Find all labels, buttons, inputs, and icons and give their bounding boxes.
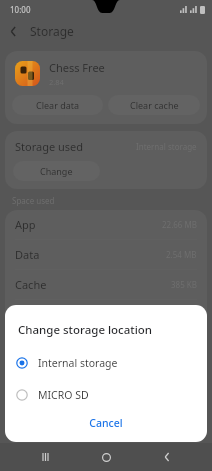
button[interactable]: Total bbox=[5, 300, 207, 329]
staticText: 385 KB bbox=[171, 279, 197, 290]
staticText: Cache bbox=[15, 277, 47, 292]
staticText: Internal storage bbox=[136, 141, 197, 152]
button[interactable]: Clear data bbox=[12, 95, 103, 115]
button[interactable]: Cancel bbox=[5, 408, 207, 438]
staticText: 22.66 MB bbox=[162, 219, 197, 230]
staticText: Chess Free bbox=[49, 60, 105, 75]
button[interactable]: MICRO SD bbox=[5, 384, 207, 406]
button[interactable]: Back bbox=[152, 443, 182, 471]
staticText: Data bbox=[15, 247, 40, 262]
staticText: Clear cache bbox=[130, 99, 179, 111]
staticText: Space used bbox=[12, 195, 55, 206]
button[interactable]: Cache bbox=[5, 270, 207, 299]
staticText: MICRO SD bbox=[38, 388, 89, 402]
staticText: Internal storage bbox=[38, 356, 118, 370]
staticText: Clear data bbox=[36, 99, 80, 111]
button[interactable]: Clear cache bbox=[108, 95, 200, 115]
staticText: Cancel bbox=[89, 416, 123, 430]
button[interactable]: App bbox=[5, 210, 207, 239]
staticText: 10:00 bbox=[10, 4, 31, 15]
button[interactable]: Data bbox=[5, 240, 207, 269]
staticText: Storage used bbox=[15, 139, 84, 154]
staticText: Change bbox=[40, 165, 73, 177]
staticText: Change storage location bbox=[18, 322, 153, 338]
staticText: 2.54 MB bbox=[166, 249, 197, 260]
button[interactable]: Home bbox=[91, 443, 121, 471]
staticText: 2.84 bbox=[49, 77, 64, 87]
staticText: App bbox=[15, 217, 36, 232]
button[interactable]: Internal storage bbox=[5, 352, 207, 374]
staticText: Storage bbox=[30, 23, 74, 39]
button[interactable]: Recent apps bbox=[31, 443, 61, 471]
button[interactable]: Change bbox=[13, 161, 100, 181]
button[interactable]: Back bbox=[0, 18, 26, 44]
